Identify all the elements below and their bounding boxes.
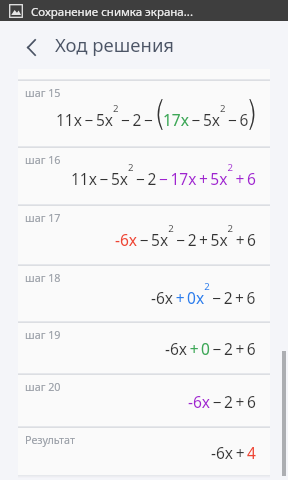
staticText: -6x − 5x2 − 2 + 5x2 + 6 — [115, 222, 256, 250]
staticText: Сохранение снимка экрана... — [31, 4, 193, 20]
staticText: 11x − 5x2 − 2 − 17x + 5x2 + 6 — [71, 161, 256, 189]
staticText: шаг 15 — [25, 85, 61, 100]
staticText: -6x + 0 − 2 + 6 — [165, 338, 256, 359]
button[interactable]: шаг 19 — [18, 323, 270, 373]
button[interactable]: Назад — [16, 32, 46, 62]
button[interactable]: шаг 17 — [18, 206, 270, 264]
button[interactable]: шаг 16 — [18, 148, 270, 204]
staticText: -6x − 2 + 6 — [188, 391, 256, 412]
staticText: шаг 19 — [25, 327, 61, 342]
staticText: шаг 16 — [25, 152, 61, 167]
staticText: шаг 17 — [25, 210, 61, 225]
staticText: шаг 20 — [25, 379, 61, 394]
staticText: 11x − 5x2 − 2 − — [56, 102, 156, 130]
button[interactable]: Результат — [18, 428, 270, 475]
staticText: Результат — [25, 432, 75, 447]
staticText: -6x + 4 — [211, 442, 256, 463]
staticText: 17x − 5x2 − 6 — [163, 102, 249, 130]
button[interactable]: шаг 18 — [18, 266, 270, 321]
staticText: -6x + 0x2 − 2 + 6 — [151, 280, 256, 308]
staticText: шаг 18 — [25, 270, 61, 285]
button[interactable]: шаг 20 — [18, 375, 270, 426]
staticText: Ход решения — [55, 32, 175, 57]
button[interactable]: шаг 15 — [18, 81, 270, 146]
